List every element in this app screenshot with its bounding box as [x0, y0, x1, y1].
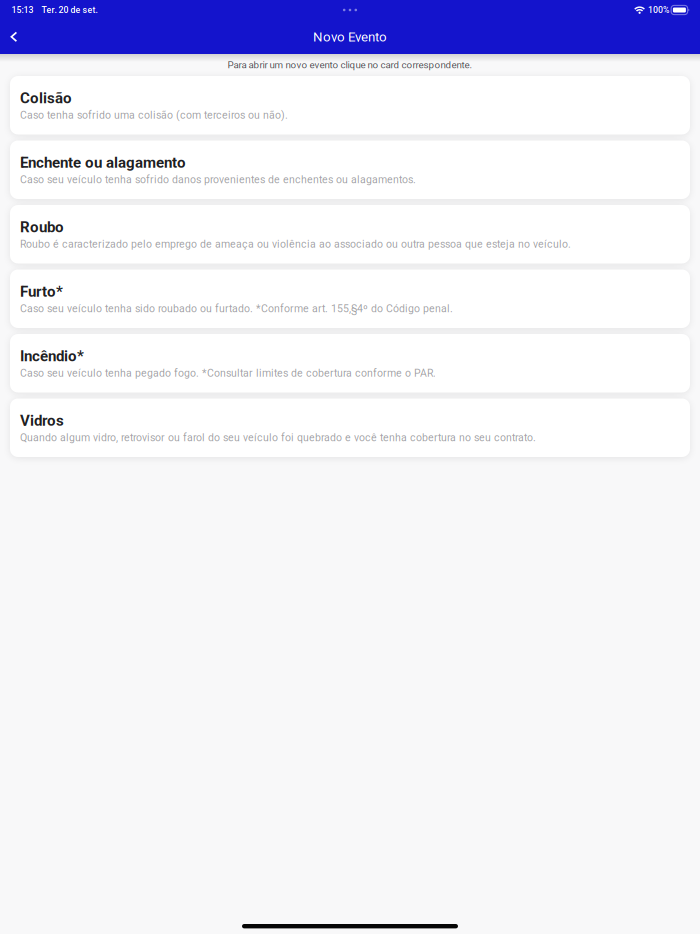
staticText: 15:13 — [11, 5, 33, 15]
button[interactable]: Furto* — [10, 269, 690, 328]
button[interactable]: Incêndio* — [10, 334, 690, 392]
staticText: Caso seu veículo tenha sofrido danos pro… — [20, 173, 416, 186]
staticText: Para abrir um novo evento clique no card… — [227, 59, 472, 71]
button[interactable]: Enchente ou alagamento — [10, 140, 690, 199]
staticText: Caso tenha sofrido uma colisão (com terc… — [20, 109, 288, 121]
staticText: Incêndio* — [20, 347, 84, 365]
staticText: Colisão — [20, 89, 72, 107]
button[interactable]: Vidros — [10, 398, 690, 457]
staticText: Novo Evento — [313, 29, 387, 45]
staticText: Roubo é caracterizado pelo emprego de am… — [20, 238, 571, 250]
button[interactable]: Colisão — [10, 76, 690, 134]
staticText: 100% — [648, 5, 669, 15]
staticText: Roubo — [20, 218, 64, 236]
button[interactable]: Roubo — [10, 205, 690, 263]
staticText: Vidros — [20, 412, 64, 429]
button[interactable]: Back — [0, 20, 28, 54]
staticText: Caso seu veículo tenha sido roubado ou f… — [20, 302, 453, 315]
staticText: Furto* — [20, 283, 63, 300]
staticText: Ter. 20 de set. — [41, 5, 97, 15]
staticText: Caso seu veículo tenha pegado fogo. *Con… — [20, 367, 436, 379]
staticText: Quando algum vidro, retrovisor ou farol … — [20, 431, 536, 444]
staticText: Enchente ou alagamento — [20, 154, 186, 171]
